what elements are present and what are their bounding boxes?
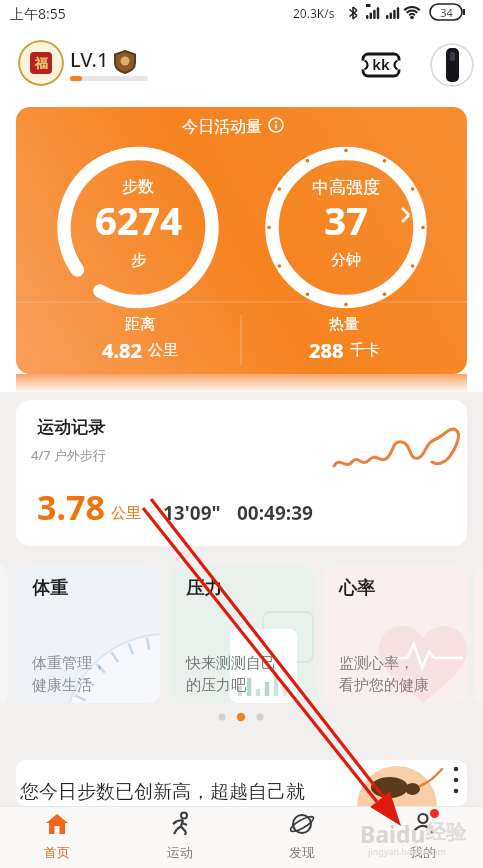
button[interactable]: kk xyxy=(361,52,401,78)
staticText: 的压力吧 xyxy=(186,676,246,695)
button[interactable]: 首页 xyxy=(17,808,97,868)
staticText: 距离 xyxy=(125,315,155,334)
staticText: 运动记录 xyxy=(37,417,105,438)
staticText: 心率 xyxy=(339,577,375,600)
staticText: 4/7 户外步行 xyxy=(31,446,107,464)
staticText: 公里 xyxy=(148,341,178,360)
staticText: 我的 xyxy=(410,844,436,860)
staticText: 运动 xyxy=(167,844,193,860)
staticText: 压力 xyxy=(186,577,222,600)
button[interactable]: 福 xyxy=(18,40,64,86)
staticText: 您今日步数已创新高，超越自己就 xyxy=(20,780,305,804)
staticText: 6274 xyxy=(95,194,182,246)
staticText: 上午8:55 xyxy=(10,4,66,23)
staticText: 体重管理， xyxy=(32,654,107,673)
button[interactable]: 运动 xyxy=(140,808,220,868)
staticText: 步数 xyxy=(122,177,154,197)
staticText: 步 xyxy=(131,251,146,270)
staticText: 体重 xyxy=(32,577,68,600)
staticText: 00:49:39 xyxy=(237,500,313,526)
staticText: kk xyxy=(372,55,390,74)
staticText: 首页 xyxy=(44,844,70,860)
staticText: 公里 xyxy=(111,504,141,523)
staticText: 37 xyxy=(324,194,368,246)
staticText: 今日活动量 xyxy=(182,117,262,137)
staticText: 4.82 xyxy=(102,337,142,364)
button[interactable]: 心率 xyxy=(323,566,467,703)
staticText: 分钟 xyxy=(331,251,361,270)
staticText: 3.78 xyxy=(37,484,105,530)
button[interactable]: 压力 xyxy=(170,566,314,703)
staticText: 千卡 xyxy=(350,341,380,360)
staticText: 288 xyxy=(309,337,344,364)
staticText: jingyan.baidu.com xyxy=(368,845,446,857)
button[interactable]: 您今日步数已创新高，超越自己就 xyxy=(16,760,467,806)
staticText: LV.1 xyxy=(70,46,109,73)
staticText: 热量 xyxy=(329,315,359,334)
button[interactable]: 发现 xyxy=(262,808,342,868)
staticText: 20.3K/s xyxy=(293,5,335,21)
staticText: 13'09" xyxy=(163,500,221,526)
staticText: 福 xyxy=(35,55,48,71)
button[interactable] xyxy=(430,43,474,87)
staticText: 看护您的健康 xyxy=(339,676,429,695)
staticText: 发现 xyxy=(289,844,315,860)
staticText: 34 xyxy=(440,5,453,20)
staticText: 中高强度 xyxy=(312,177,380,198)
button[interactable]: 体重 xyxy=(16,566,160,703)
staticText: 经验 xyxy=(426,820,466,845)
staticText: 快来测测自己 xyxy=(186,654,276,673)
staticText: 监测心率， xyxy=(339,654,414,673)
button[interactable]: 今日活动量 xyxy=(16,107,467,374)
staticText: Baidu xyxy=(360,818,426,849)
button[interactable]: 运动记录 xyxy=(16,400,467,546)
button[interactable]: 我的 xyxy=(383,808,463,868)
staticText: 健康生活 xyxy=(32,676,92,695)
